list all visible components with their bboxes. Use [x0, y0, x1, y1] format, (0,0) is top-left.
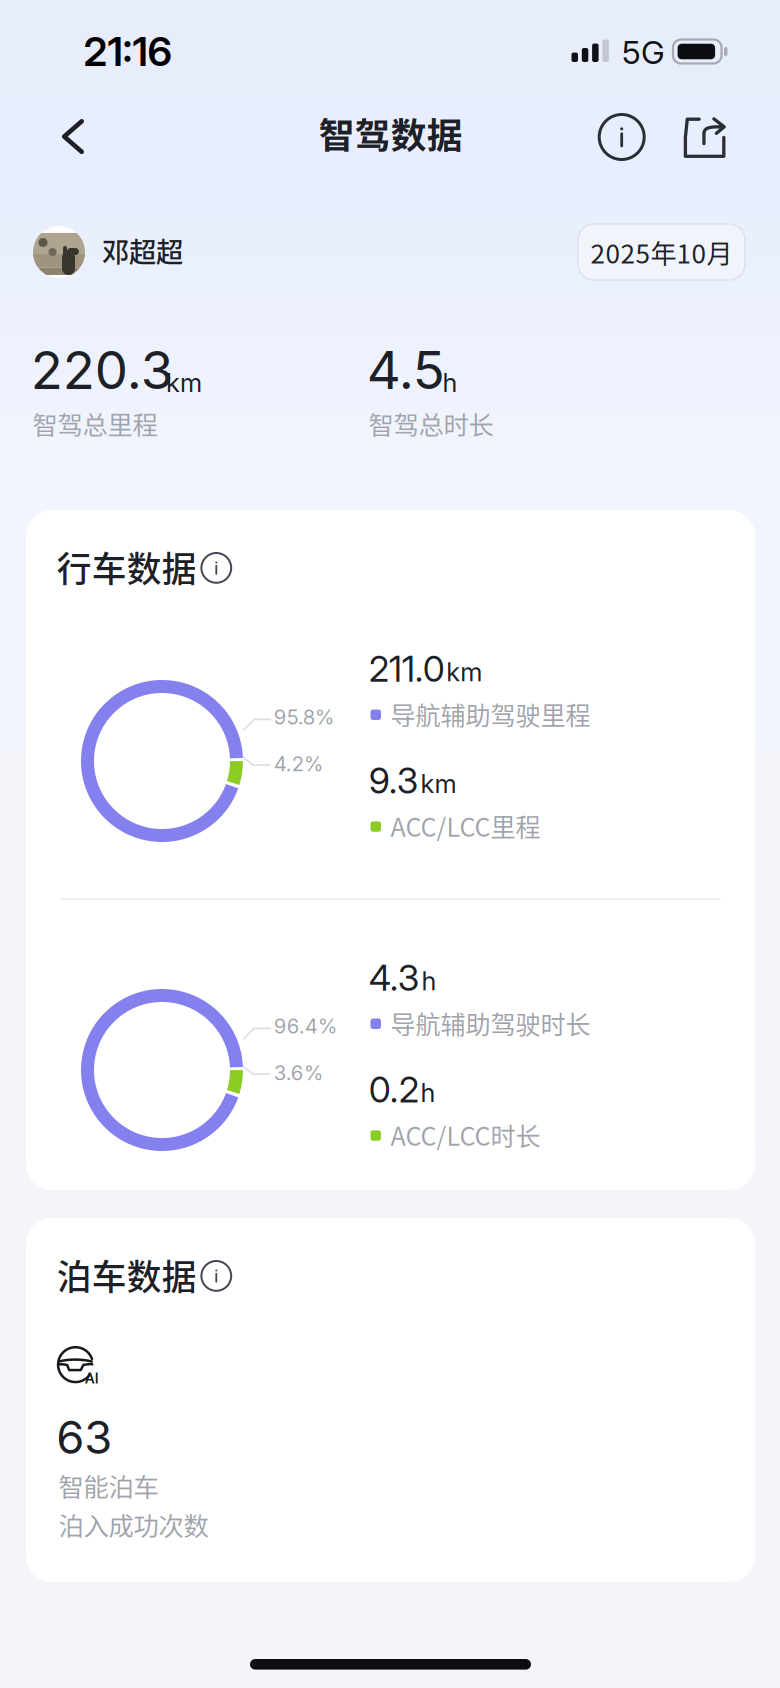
staticText: 0.2 — [369, 1068, 419, 1111]
button[interactable]: Share — [670, 103, 739, 171]
staticText: 泊车数据 — [57, 1250, 197, 1300]
staticText: 邓超超 — [102, 231, 183, 270]
staticText: 3.6% — [274, 1061, 324, 1085]
staticText: 63 — [56, 1410, 112, 1465]
staticText: 4.2% — [274, 752, 324, 776]
staticText: 211.0 — [369, 647, 445, 690]
staticText: 9.3 — [369, 759, 419, 802]
staticText: 4.5 — [367, 338, 445, 402]
staticText: h — [442, 367, 457, 398]
staticText: h — [420, 1077, 435, 1108]
staticText: 智驾总里程 — [32, 405, 157, 442]
staticText: 行车数据 — [57, 542, 197, 592]
button[interactable]: About 行车数据 — [192, 544, 240, 592]
button[interactable]: Back — [43, 100, 103, 173]
staticText: 95.8% — [274, 705, 335, 729]
button[interactable]: Information — [583, 98, 660, 175]
button[interactable]: 2025年10月 — [578, 224, 745, 280]
staticText: km — [166, 367, 202, 398]
staticText: 4.3 — [369, 956, 420, 999]
staticText: km — [446, 656, 482, 687]
staticText: 21:16 — [84, 27, 173, 76]
staticText: h — [421, 965, 436, 996]
button[interactable]: About 泊车数据 — [192, 1252, 240, 1300]
staticText: 96.4% — [274, 1014, 338, 1038]
staticText: 智驾数据 — [319, 107, 463, 159]
staticText: 导航辅助驾驶里程 — [391, 696, 591, 732]
staticText: ACC/LCC时长 — [391, 1117, 541, 1153]
staticText: ACC/LCC里程 — [391, 808, 541, 844]
staticText: 泊入成功次数 — [58, 1506, 208, 1543]
staticText: 导航辅助驾驶时长 — [391, 1005, 591, 1041]
staticText: 2025年10月 — [590, 233, 732, 271]
staticText: 5G — [622, 33, 665, 72]
staticText: km — [420, 768, 456, 799]
staticText: 智驾总时长 — [369, 405, 494, 442]
staticText: 智能泊车 — [58, 1467, 158, 1504]
staticText: 220.3 — [31, 338, 174, 402]
staticText: AI — [85, 1370, 99, 1387]
